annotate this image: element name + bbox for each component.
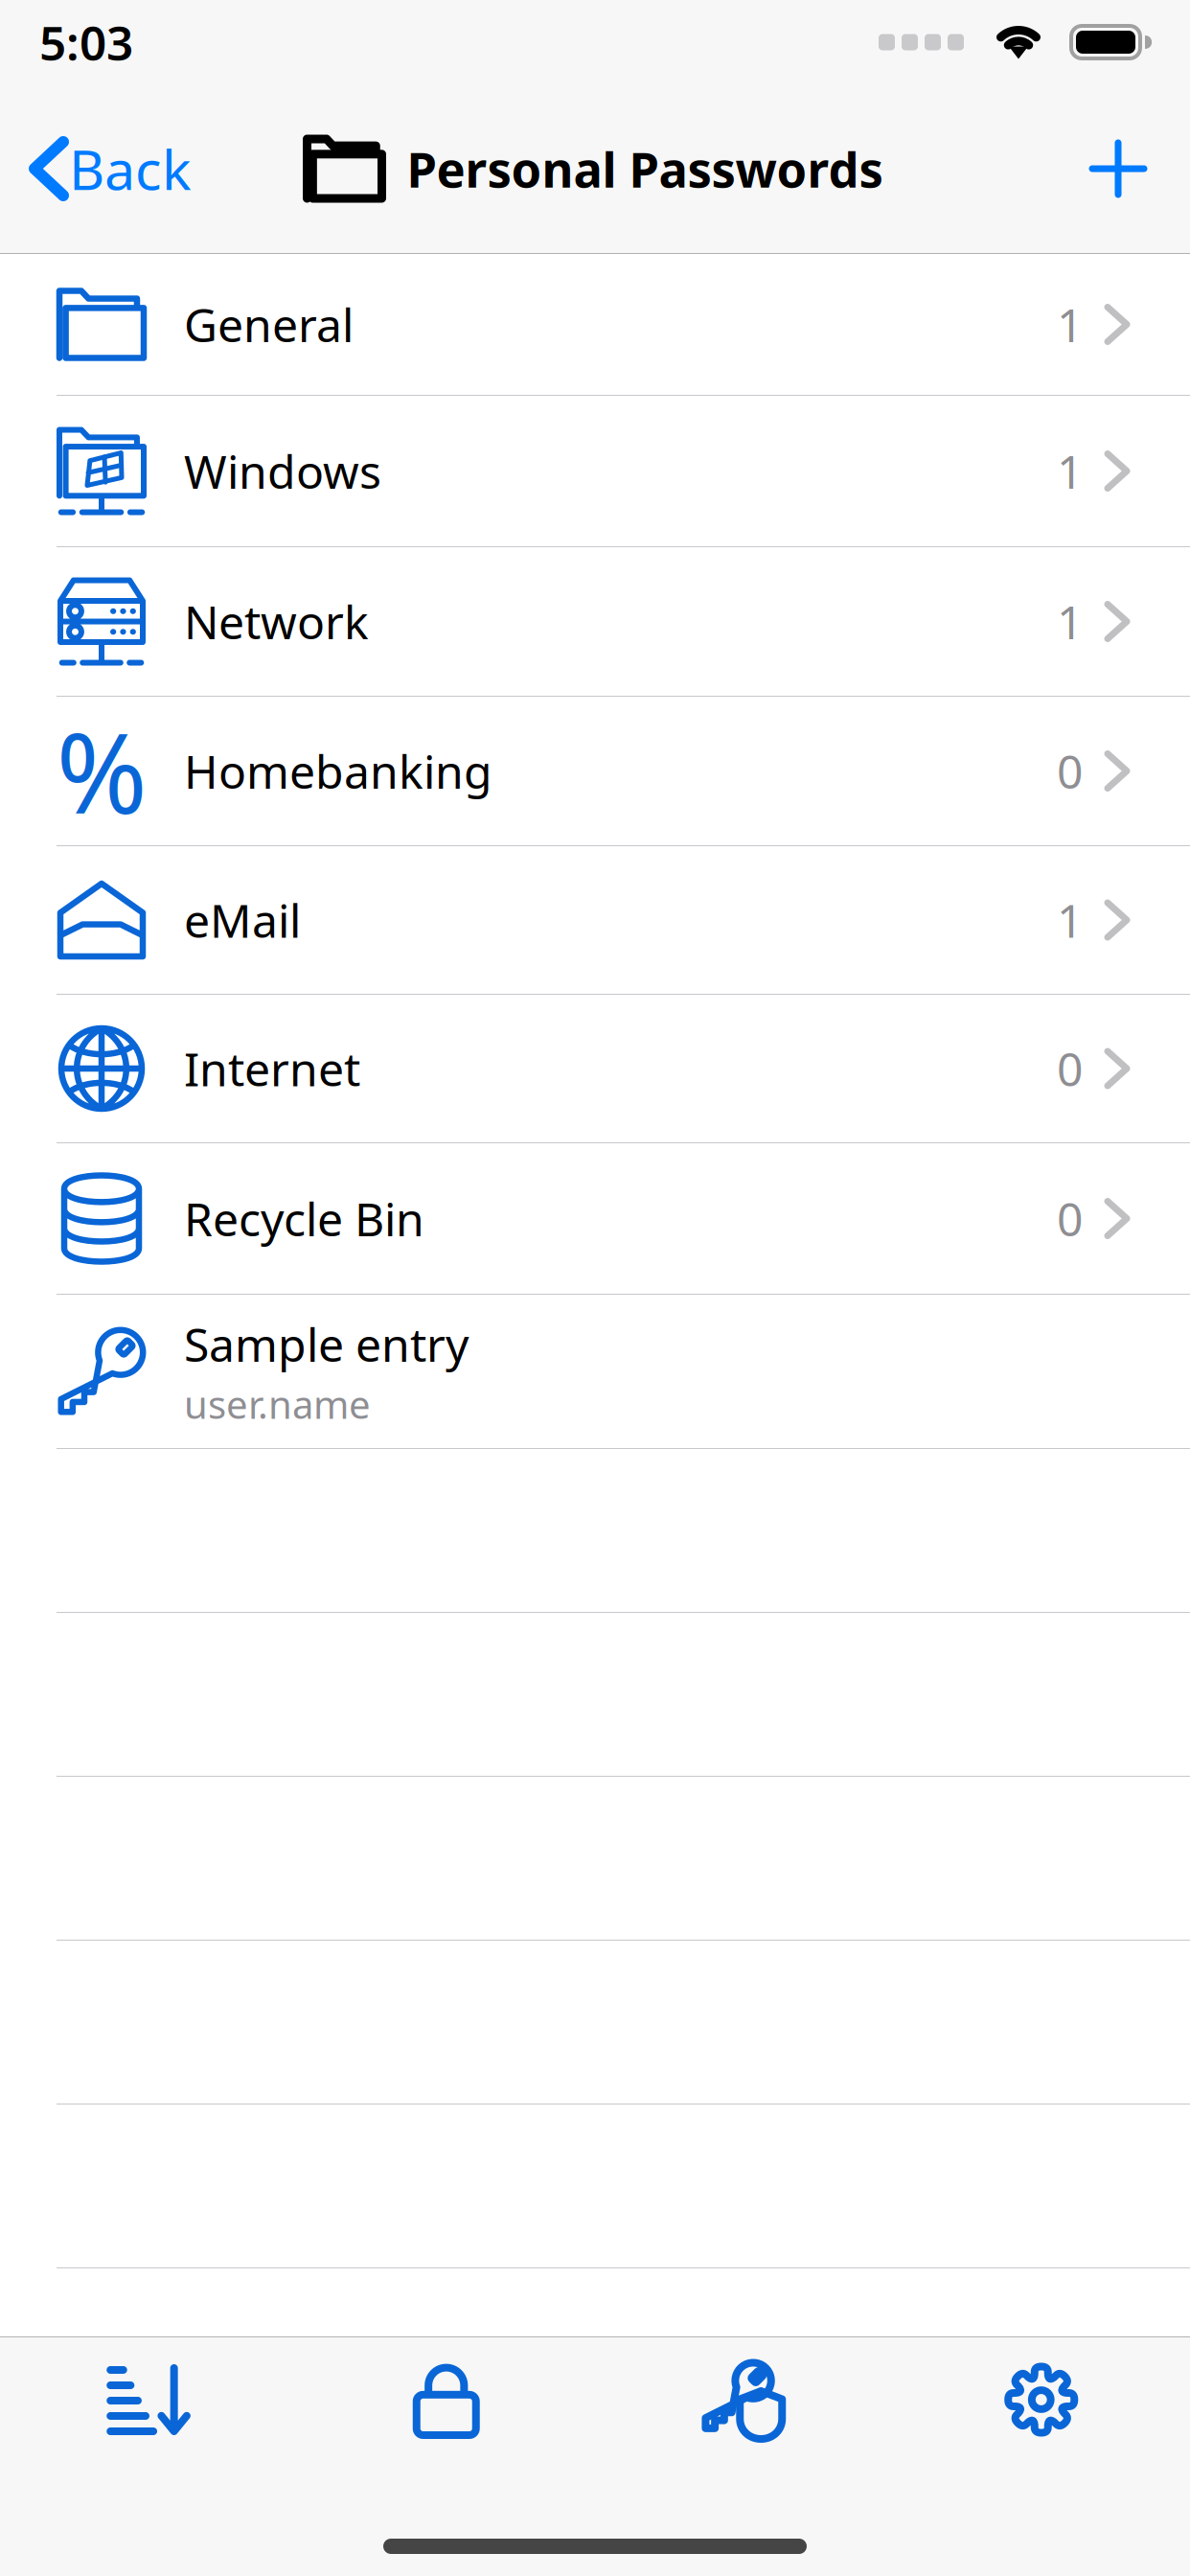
button[interactable]: eMail (0, 846, 1190, 995)
staticText: user.name (184, 1378, 371, 1429)
button[interactable]: Network (0, 547, 1190, 697)
button[interactable]: Windows (0, 396, 1190, 547)
staticText: Personal Passwords (407, 136, 883, 201)
button[interactable]: Back (0, 84, 220, 253)
staticText: % (56, 698, 147, 844)
staticText: 1 (1057, 440, 1083, 501)
staticText: General (184, 294, 354, 355)
button[interactable]: General (0, 254, 1190, 396)
staticText: Recycle Bin (184, 1188, 424, 1249)
button[interactable]: Sort (0, 2337, 297, 2462)
staticText: eMail (184, 889, 301, 950)
staticText: Back (69, 132, 192, 205)
staticText: 5:03 (39, 11, 133, 74)
button[interactable]: Recycle Bin (0, 1143, 1190, 1295)
staticText: Windows (184, 440, 381, 501)
button[interactable]: Internet (0, 995, 1190, 1143)
staticText: 0 (1057, 1188, 1083, 1249)
staticText: 1 (1057, 889, 1083, 950)
staticText: 0 (1057, 1038, 1083, 1099)
staticText: Homebanking (184, 740, 492, 801)
button[interactable]: Sample entry (0, 1295, 1190, 1449)
staticText: 1 (1057, 591, 1083, 652)
button[interactable]: Add (1050, 84, 1190, 253)
staticText: Sample entry (184, 1313, 469, 1375)
staticText: 1 (1057, 294, 1083, 355)
button[interactable]: Settings (892, 2337, 1190, 2462)
button[interactable]: % (0, 697, 1190, 846)
staticText: Internet (184, 1038, 360, 1099)
staticText: 0 (1057, 740, 1083, 801)
staticText: Network (184, 591, 369, 652)
button[interactable]: Passwords (595, 2337, 892, 2462)
button[interactable]: Lock (297, 2337, 595, 2462)
